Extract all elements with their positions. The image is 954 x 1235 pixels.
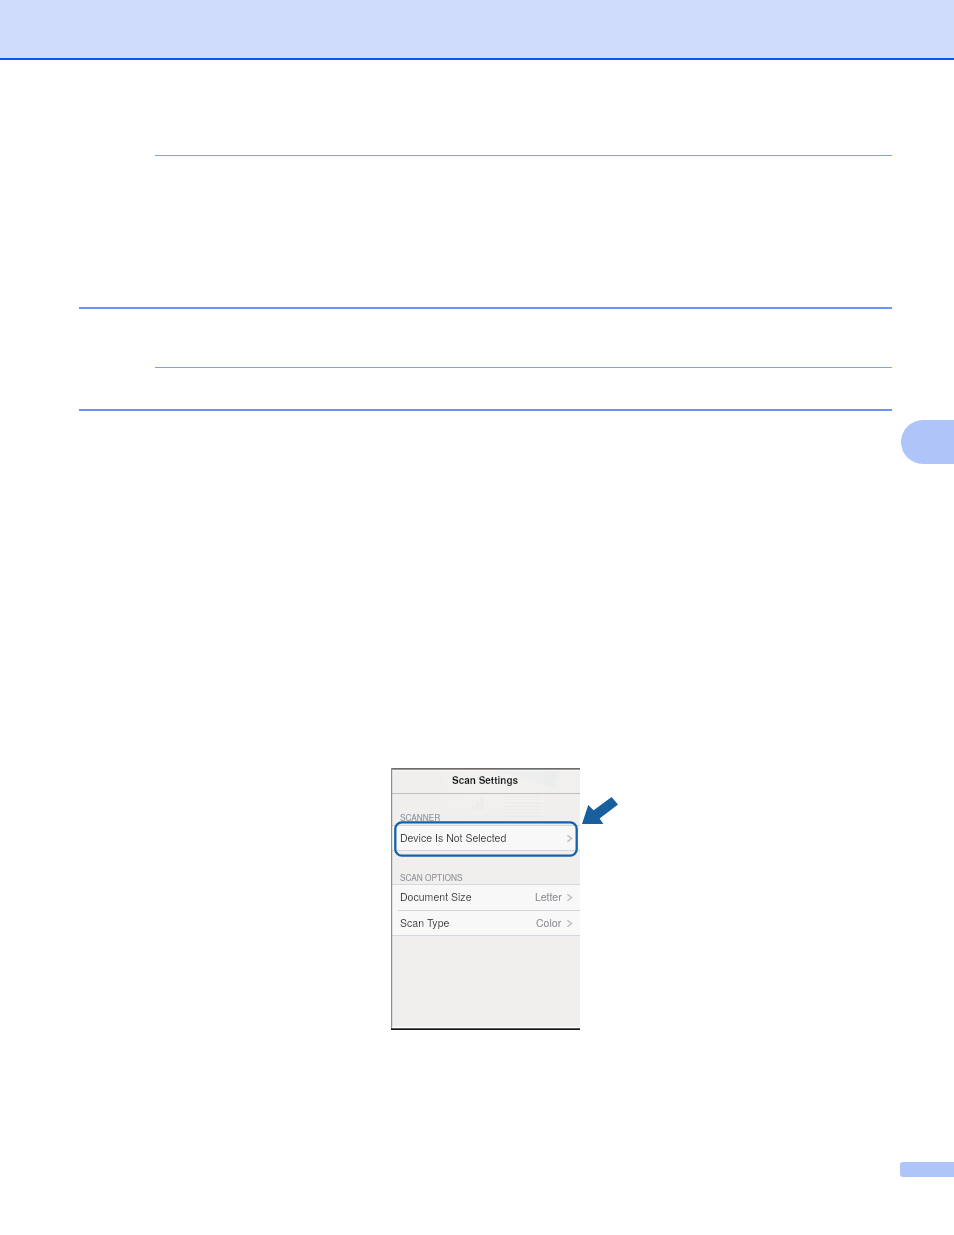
staticText: Color — [536, 915, 562, 930]
staticText: Scan Settings — [452, 773, 519, 787]
button[interactable]: Page tab — [900, 1162, 954, 1177]
other: Callout arrow — [582, 797, 618, 824]
staticText: Scan Type — [400, 915, 450, 930]
staticText: Letter — [535, 889, 562, 904]
button[interactable]: Scan Type — [400, 910, 572, 936]
button[interactable]: Device Is Not Selected highlight — [394, 821, 578, 857]
button[interactable]: Document Size — [400, 884, 572, 910]
button[interactable]: Chapter tab — [901, 420, 954, 464]
button[interactable]: Device Is Not Selected — [400, 825, 572, 851]
staticText: Document Size — [400, 889, 472, 904]
staticText: Device Is Not Selected — [400, 830, 507, 845]
staticText: SCANNER — [400, 811, 441, 823]
staticText: SCAN OPTIONS — [400, 871, 463, 883]
